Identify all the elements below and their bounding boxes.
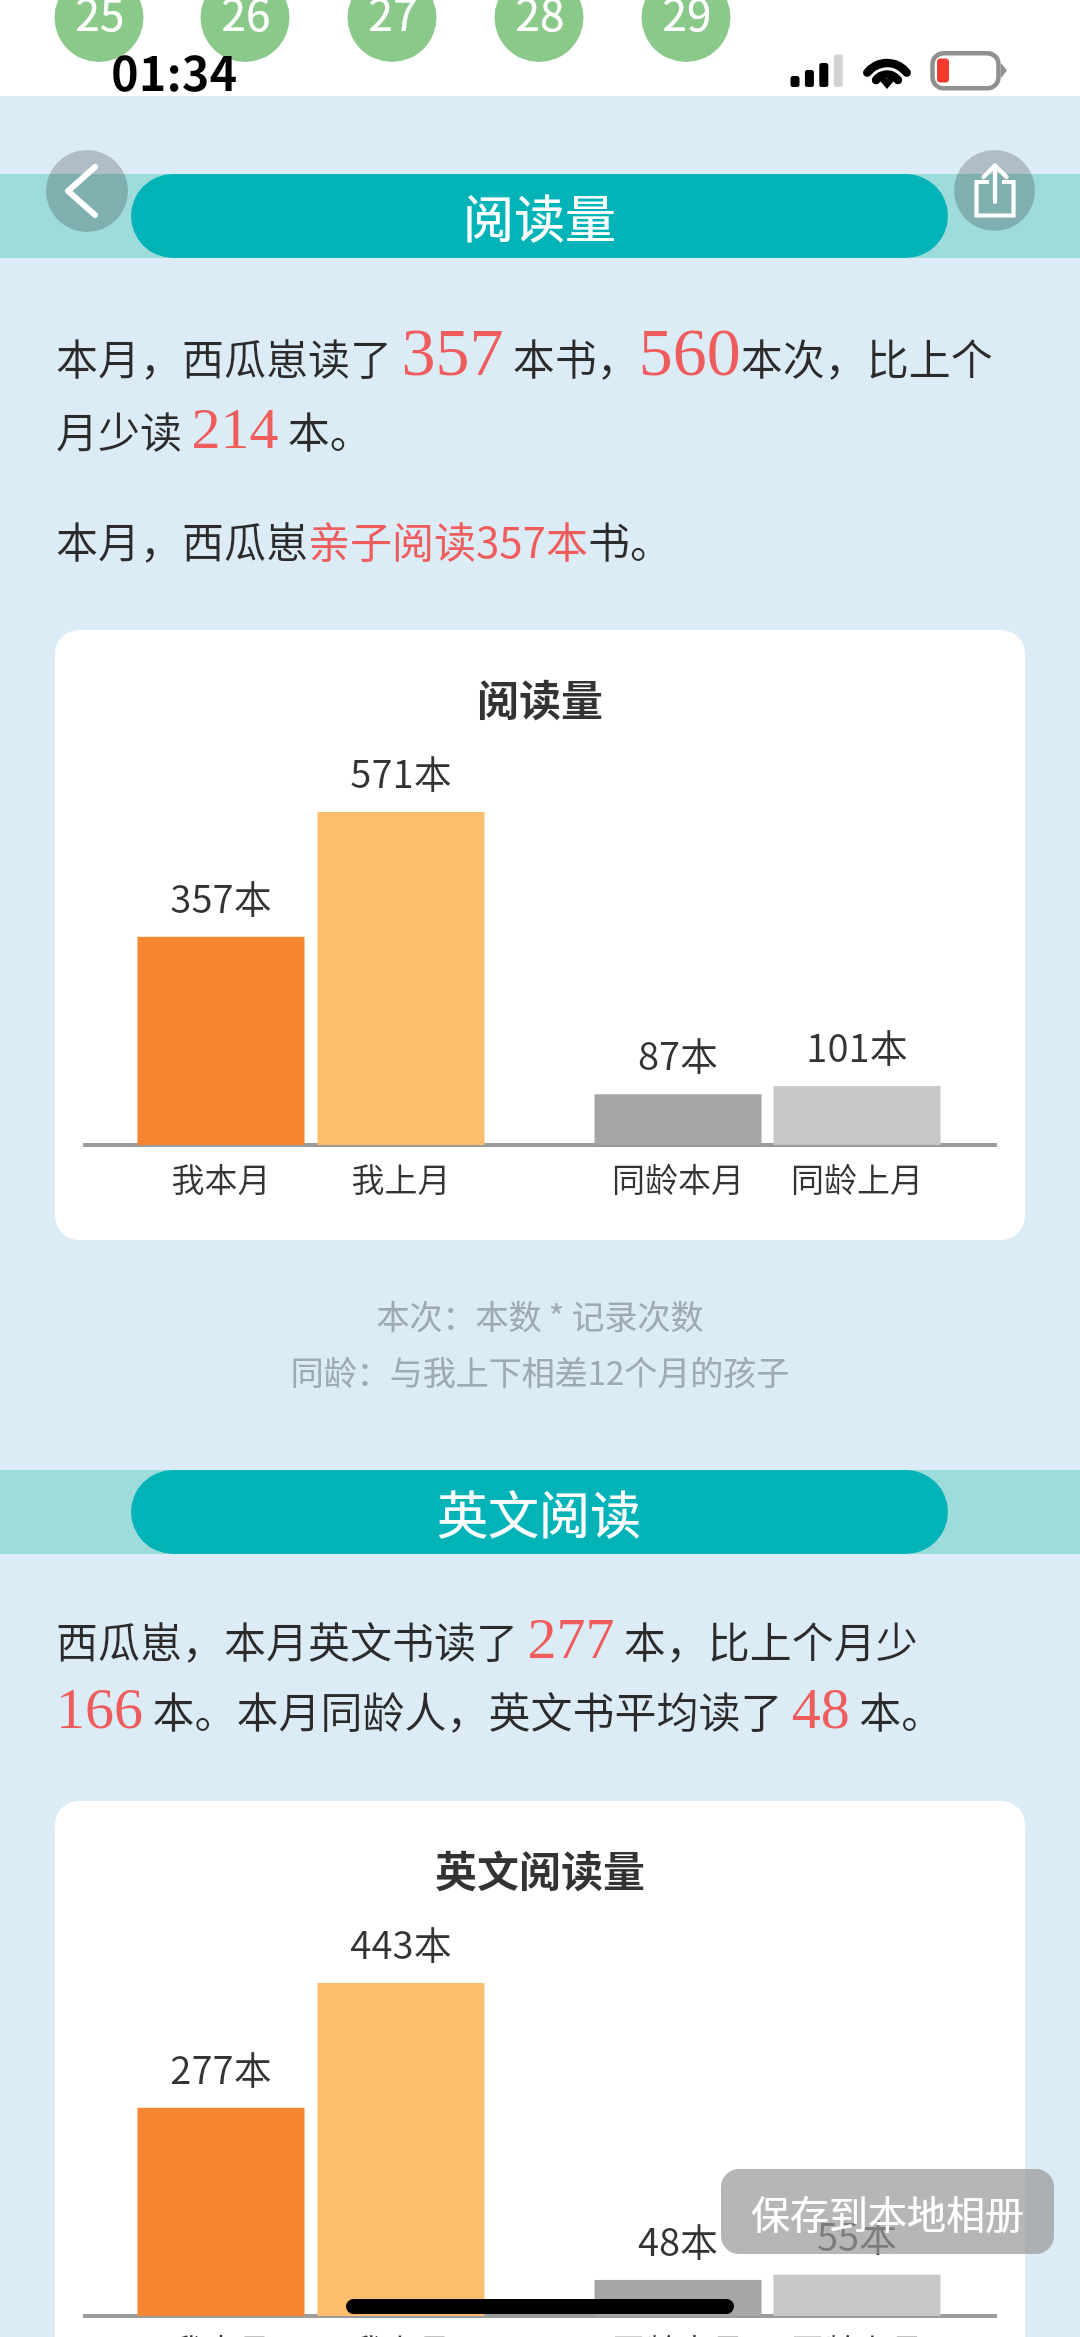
staticText: 357本 [81, 869, 361, 924]
staticText: 阅读量 [463, 179, 617, 253]
staticText: 28 [480, 0, 600, 44]
staticText: 我本月 [81, 1154, 361, 1202]
button[interactable]: 保存到本地相册 [721, 2169, 1054, 2254]
staticText: 本次：本数 * 记录次数 [0, 1291, 1080, 1339]
staticText: 29 [627, 0, 747, 44]
staticText: 48本 [538, 2212, 818, 2267]
staticText: 我本月 [81, 2325, 361, 2337]
button[interactable]: Share [954, 150, 1035, 231]
staticText: 443本 [261, 1915, 541, 1970]
staticText: 26 [186, 0, 306, 44]
staticText: 我上月 [261, 2325, 541, 2337]
staticText: 我上月 [261, 1154, 541, 1202]
staticText: 英文阅读 [437, 1475, 642, 1549]
button[interactable]: Back [46, 150, 128, 232]
staticText: 英文阅读量 [55, 1838, 1025, 1899]
staticText: 本月，西瓜崽亲子阅读357本书。 [56, 509, 672, 570]
button[interactable]: 英文阅读 [131, 1470, 948, 1554]
staticText: 阅读量 [55, 667, 1025, 728]
staticText: 01:34 [111, 36, 238, 104]
staticText: 同龄上月 [717, 1154, 997, 1202]
staticText: 571本 [261, 744, 541, 799]
staticText: 25 [40, 0, 160, 44]
staticText: 277本 [81, 2040, 361, 2095]
staticText: 55本 [717, 2207, 997, 2262]
staticText: 101本 [717, 1018, 997, 1073]
button[interactable]: 阅读量 [131, 174, 948, 258]
staticText: 西瓜崽，本月英文书读了 277 本，比上个月少 166 本。本月同龄人，英文书平… [56, 1606, 991, 1741]
staticText: 同龄本月 [538, 1154, 818, 1202]
staticText: 同龄上月 [717, 2325, 997, 2337]
staticText: 同龄：与我上下相差12个月的孩子 [0, 1347, 1080, 1395]
staticText: 27 [333, 0, 453, 44]
staticText: 保存到本地相册 [751, 2184, 1025, 2240]
staticText: 本月，西瓜崽读了 357 本书，560本次，比上个月少读 214 本。 [56, 314, 1016, 461]
staticText: 87本 [538, 1026, 818, 1081]
staticText: 同龄本月 [538, 2325, 818, 2337]
